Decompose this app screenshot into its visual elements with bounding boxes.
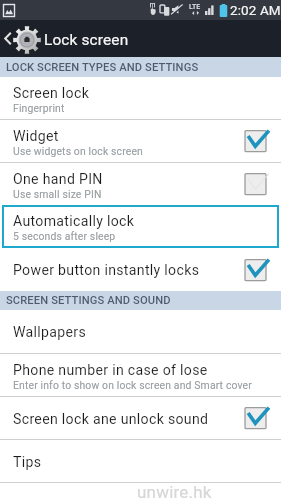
staticText: Screen lock <box>13 85 90 102</box>
staticText: SCREEN SETTINGS AND SOUND <box>6 294 171 307</box>
staticText: Wallpapers <box>13 324 87 341</box>
button[interactable]: Tips <box>0 440 281 482</box>
staticText: Automatically lock <box>13 213 135 230</box>
button[interactable]: Back to settings <box>0 20 281 57</box>
button[interactable]: Phone number in case of lose <box>0 354 281 396</box>
button[interactable]: Screen lock <box>0 77 281 119</box>
staticText: Enter info to show on lock screen and Sm… <box>13 379 252 391</box>
staticText: Tips <box>13 454 42 471</box>
staticText: LOCK SCREEN TYPES AND SETTINGS <box>6 61 199 74</box>
staticText: Use widgets on lock screen <box>13 145 143 157</box>
staticText: unwire.hk <box>137 482 212 499</box>
button[interactable]: Wallpapers <box>0 310 281 353</box>
staticText: LTE <box>189 3 201 11</box>
staticText: Screen lock ane unlock sound <box>13 411 209 428</box>
staticText: 5 seconds after sleep <box>13 230 116 242</box>
button[interactable]: Automatically lock <box>0 205 281 248</box>
staticText: Lock screen <box>44 31 129 49</box>
staticText: Fingerprint <box>13 102 65 114</box>
button[interactable]: Power button instantly locks <box>0 248 281 291</box>
staticText: Phone number in case of lose <box>13 362 208 379</box>
staticText: One hand PIN <box>13 171 103 188</box>
staticText: 2:02 AM <box>230 2 281 18</box>
button[interactable]: Widget <box>0 120 281 162</box>
button[interactable]: One hand PIN <box>0 163 281 205</box>
staticText: Widget <box>13 128 59 145</box>
staticText: Power button instantly locks <box>13 262 200 279</box>
button[interactable]: Screen lock ane unlock sound <box>0 397 281 439</box>
staticText: Use small size PIN <box>13 188 102 200</box>
